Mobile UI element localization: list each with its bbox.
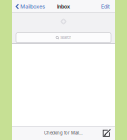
button[interactable]: Mailboxes [12, 1, 47, 12]
button[interactable]: Edit [99, 1, 115, 12]
staticText: Inbox [57, 3, 70, 10]
button[interactable]: Search [12, 33, 115, 43]
button[interactable]: Compose [101, 127, 115, 139]
staticText: Edit [101, 3, 110, 10]
staticText: Checking for Mail… [44, 130, 83, 136]
staticText: Mailboxes [20, 3, 45, 10]
staticText: Search [60, 35, 71, 40]
